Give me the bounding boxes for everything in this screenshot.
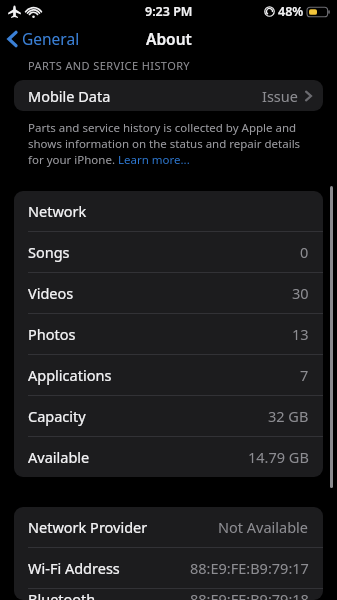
staticText: Videos bbox=[28, 283, 74, 303]
staticText: shows information on the status and repa… bbox=[28, 136, 301, 152]
staticText: 88:E9:FE:B9:79:18 bbox=[190, 589, 309, 600]
staticText: Songs bbox=[28, 242, 70, 262]
staticText: 7 bbox=[300, 365, 309, 385]
staticText: Available bbox=[28, 447, 90, 467]
staticText: 30 bbox=[292, 283, 309, 303]
staticText: Capacity bbox=[28, 406, 86, 426]
button[interactable]: Network Provider bbox=[14, 507, 323, 547]
staticText: 14.79 GB bbox=[248, 447, 309, 467]
staticText: General bbox=[22, 28, 80, 49]
button[interactable]: Songs bbox=[14, 232, 323, 272]
other: Mobile Data service issue details bbox=[305, 90, 312, 102]
staticText: Parts and service history is collected b… bbox=[28, 120, 297, 136]
button[interactable]: Available bbox=[14, 437, 323, 477]
button[interactable]: Photos bbox=[14, 314, 323, 354]
button[interactable]: Applications bbox=[14, 355, 323, 395]
staticText: 0 bbox=[300, 242, 309, 262]
staticText: Applications bbox=[28, 365, 112, 385]
staticText: PARTS AND SERVICE HISTORY bbox=[28, 58, 190, 73]
button[interactable]: Bluetooth bbox=[14, 589, 323, 600]
staticText: Issue bbox=[262, 86, 298, 106]
staticText: Wi-Fi Address bbox=[28, 558, 120, 578]
button[interactable]: Mobile Data bbox=[14, 80, 323, 111]
staticText: Network bbox=[28, 201, 87, 221]
staticText: 13 bbox=[292, 324, 309, 344]
staticText: for your iPhone. bbox=[28, 152, 118, 168]
staticText: Mobile Data bbox=[28, 86, 111, 106]
staticText: 32 GB bbox=[268, 406, 309, 426]
button[interactable]: Learn more... bbox=[118, 152, 190, 168]
staticText: Photos bbox=[28, 324, 76, 344]
button[interactable]: General bbox=[0, 23, 88, 54]
staticText: Learn more... bbox=[118, 152, 190, 168]
staticText: Network Provider bbox=[28, 517, 148, 537]
staticText: 48% bbox=[278, 3, 304, 20]
staticText: Bluetooth bbox=[28, 589, 96, 600]
button[interactable]: Capacity bbox=[14, 396, 323, 436]
button[interactable]: Network bbox=[14, 191, 323, 231]
button[interactable]: Wi-Fi Address bbox=[14, 548, 323, 588]
staticText: 9:23 PM bbox=[145, 3, 193, 20]
staticText: Not Available bbox=[218, 517, 309, 537]
button[interactable]: Videos bbox=[14, 273, 323, 313]
staticText: 88:E9:FE:B9:79:17 bbox=[190, 558, 309, 578]
staticText: About bbox=[146, 28, 192, 49]
